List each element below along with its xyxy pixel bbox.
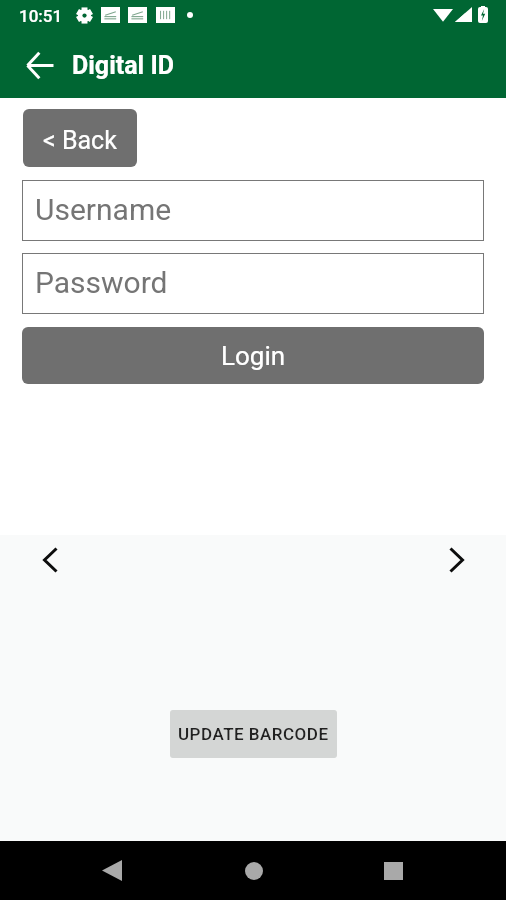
- button[interactable]: Password: [22, 253, 484, 314]
- staticText: < Back: [43, 126, 117, 155]
- button[interactable]: Recents: [359, 841, 427, 900]
- staticText: Login: [221, 341, 286, 371]
- staticText: Password: [35, 265, 168, 300]
- button[interactable]: Previous: [22, 535, 78, 585]
- staticText: UPDATE BARCODE: [178, 724, 329, 744]
- button[interactable]: < Back: [23, 109, 137, 167]
- button[interactable]: Back: [11, 36, 69, 94]
- button[interactable]: Home: [220, 841, 288, 900]
- button[interactable]: Back: [78, 841, 146, 900]
- staticText: Username: [35, 192, 172, 227]
- button[interactable]: Login: [22, 327, 484, 384]
- button[interactable]: UPDATE BARCODE: [170, 710, 337, 758]
- staticText: Digital ID: [72, 51, 174, 80]
- staticText: 10:51: [19, 6, 63, 26]
- button[interactable]: Next: [428, 535, 484, 585]
- button[interactable]: Username: [22, 180, 484, 241]
